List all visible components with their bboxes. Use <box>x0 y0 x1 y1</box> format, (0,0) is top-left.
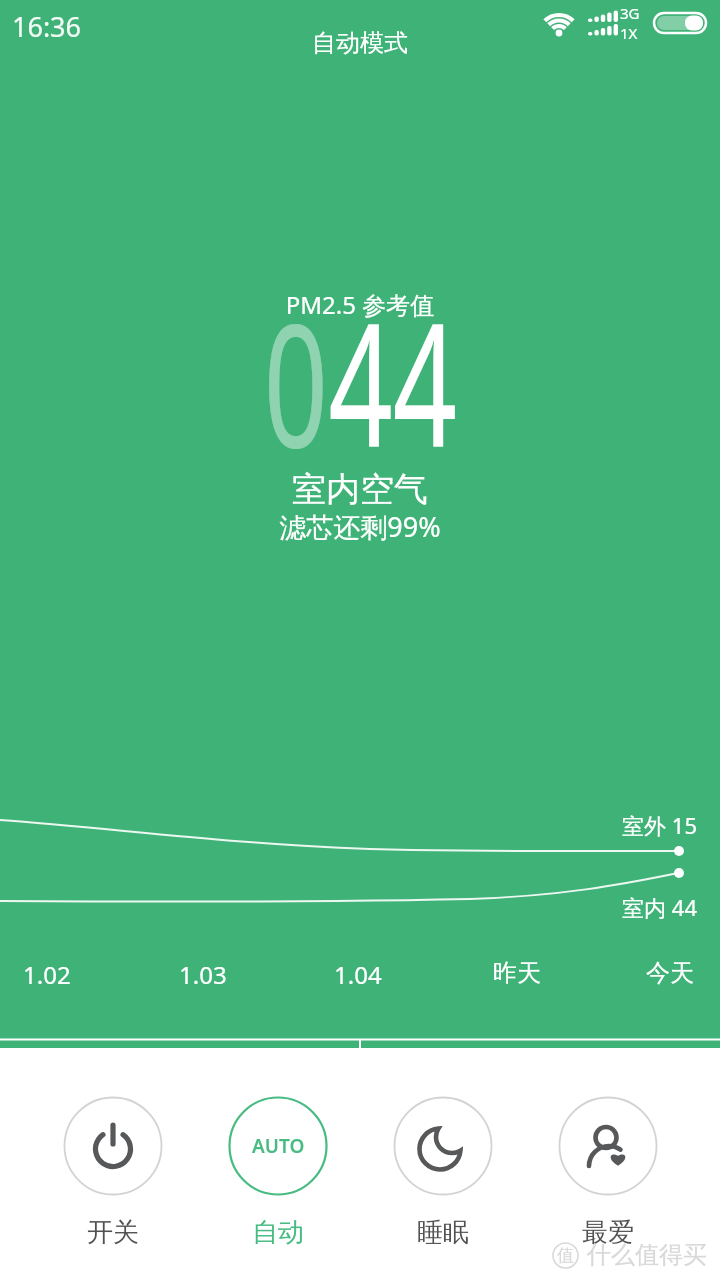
staticText: 睡眠 <box>417 1216 469 1249</box>
staticText: 44 <box>328 265 457 497</box>
staticText: 0 <box>264 265 328 497</box>
button[interactable]: 开关 <box>58 1097 168 1265</box>
staticText: 值 <box>557 1245 574 1266</box>
staticText: 室内空气 <box>0 468 720 511</box>
button[interactable]: 最爱 <box>553 1097 663 1265</box>
staticText: 开关 <box>87 1216 139 1249</box>
staticText: 自动模式 <box>0 28 720 58</box>
button[interactable]: 睡眠 <box>388 1097 498 1265</box>
button[interactable]: AUTO <box>223 1097 333 1265</box>
staticText: 滤芯还剩99% <box>0 508 720 545</box>
staticText: 16:36 <box>12 8 82 45</box>
staticText: 1X <box>620 23 638 43</box>
staticText: 昨天 <box>493 958 541 988</box>
staticText: 什么值得买 <box>587 1240 707 1270</box>
staticText: 室外 15 <box>557 810 697 840</box>
staticText: 3G <box>620 3 640 23</box>
staticText: 1.02 <box>23 958 71 991</box>
staticText: 自动 <box>252 1216 304 1249</box>
staticText: 1.04 <box>334 958 382 991</box>
staticText: AUTO <box>252 1133 305 1159</box>
staticText: PM2.5 参考值 <box>0 288 720 321</box>
staticText: 1.03 <box>179 958 227 991</box>
staticText: 最爱 <box>582 1216 634 1249</box>
staticText: 室内 44 <box>557 892 697 922</box>
staticText: 今天 <box>646 958 694 988</box>
